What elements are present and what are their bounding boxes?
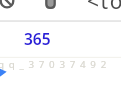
staticText: qq_37037492	[0, 58, 111, 71]
staticText: <to	[87, 0, 121, 16]
button[interactable]: Block	[0, 0, 23, 17]
button[interactable]: Send	[0, 67, 8, 77]
staticText: 365	[24, 28, 51, 49]
button[interactable]: Delete	[45, 0, 56, 9]
